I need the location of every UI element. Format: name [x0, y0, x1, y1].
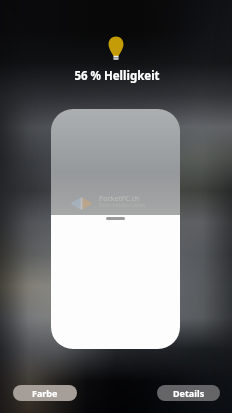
staticText: 56 % Helligkeit	[1, 68, 232, 84]
staticText: Details	[173, 387, 205, 399]
button[interactable]: Farbe	[13, 385, 77, 401]
staticText: Dein mobiles Leben	[99, 202, 146, 209]
button[interactable]: Details	[157, 385, 220, 401]
button[interactable]: Helligkeitsregler	[51, 109, 180, 349]
staticText: PocketPC.ch	[99, 194, 140, 204]
staticText: Farbe	[32, 387, 58, 399]
